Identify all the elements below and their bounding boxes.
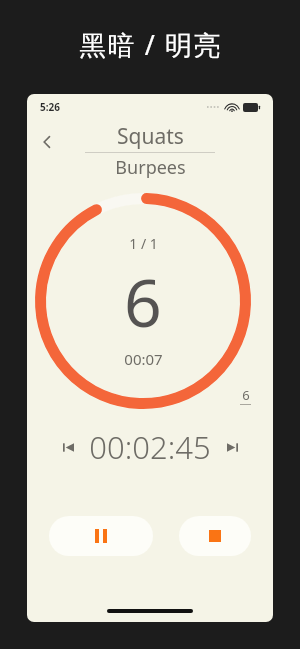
button[interactable]: Stop [179,516,251,556]
staticText: 1 / 1 [129,234,158,253]
staticText: Burpees [115,155,186,180]
staticText: 6 [124,256,162,346]
button[interactable]: Next [221,436,243,458]
staticText: 5:26 [40,100,60,114]
staticText: 6 [242,386,250,404]
staticText: 00:02:45 [89,426,211,468]
button[interactable]: Pause [49,516,153,556]
staticText: 黑暗 / 明亮 [79,26,222,63]
button[interactable]: Previous [57,436,79,458]
button[interactable]: Back [33,128,61,156]
button[interactable]: 6 [240,386,251,405]
staticText: 00:07 [124,349,163,369]
staticText: Squats [117,122,184,151]
